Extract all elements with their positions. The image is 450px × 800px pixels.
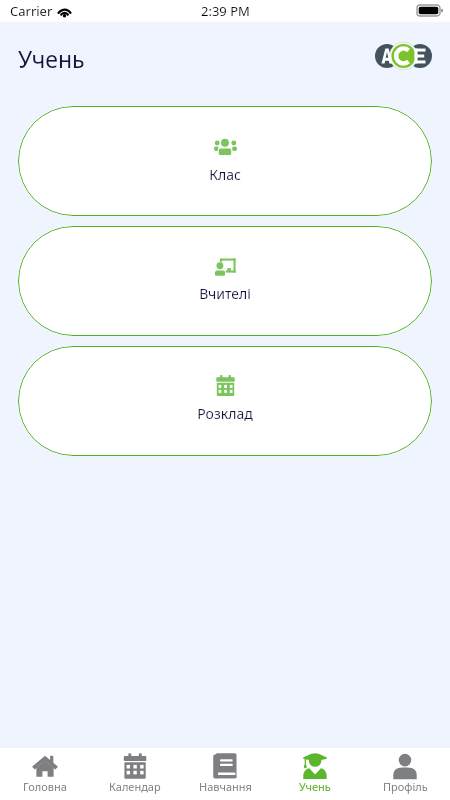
staticText: Навчання <box>199 779 252 794</box>
staticText: Профіль <box>383 779 428 794</box>
staticText: Календар <box>109 779 161 794</box>
staticText: Учень <box>18 43 85 74</box>
button[interactable]: Клас <box>18 106 432 216</box>
button[interactable]: Учень <box>270 748 360 800</box>
staticText: Учень <box>299 779 331 794</box>
button[interactable]: ACE logo <box>375 44 432 68</box>
button[interactable]: Профіль <box>360 748 450 800</box>
staticText: Розклад <box>197 404 253 423</box>
button[interactable]: Головна <box>0 748 90 800</box>
button[interactable]: Розклад <box>18 346 432 456</box>
staticText: Головна <box>23 779 67 794</box>
button[interactable]: Вчителі <box>18 226 432 336</box>
staticText: Вчителі <box>199 284 251 303</box>
staticText: 2:39 PM <box>201 2 250 20</box>
staticText: Клас <box>209 165 241 184</box>
button[interactable]: Календар <box>90 748 180 800</box>
button[interactable]: Навчання <box>180 748 270 800</box>
staticText: Carrier <box>10 2 53 20</box>
